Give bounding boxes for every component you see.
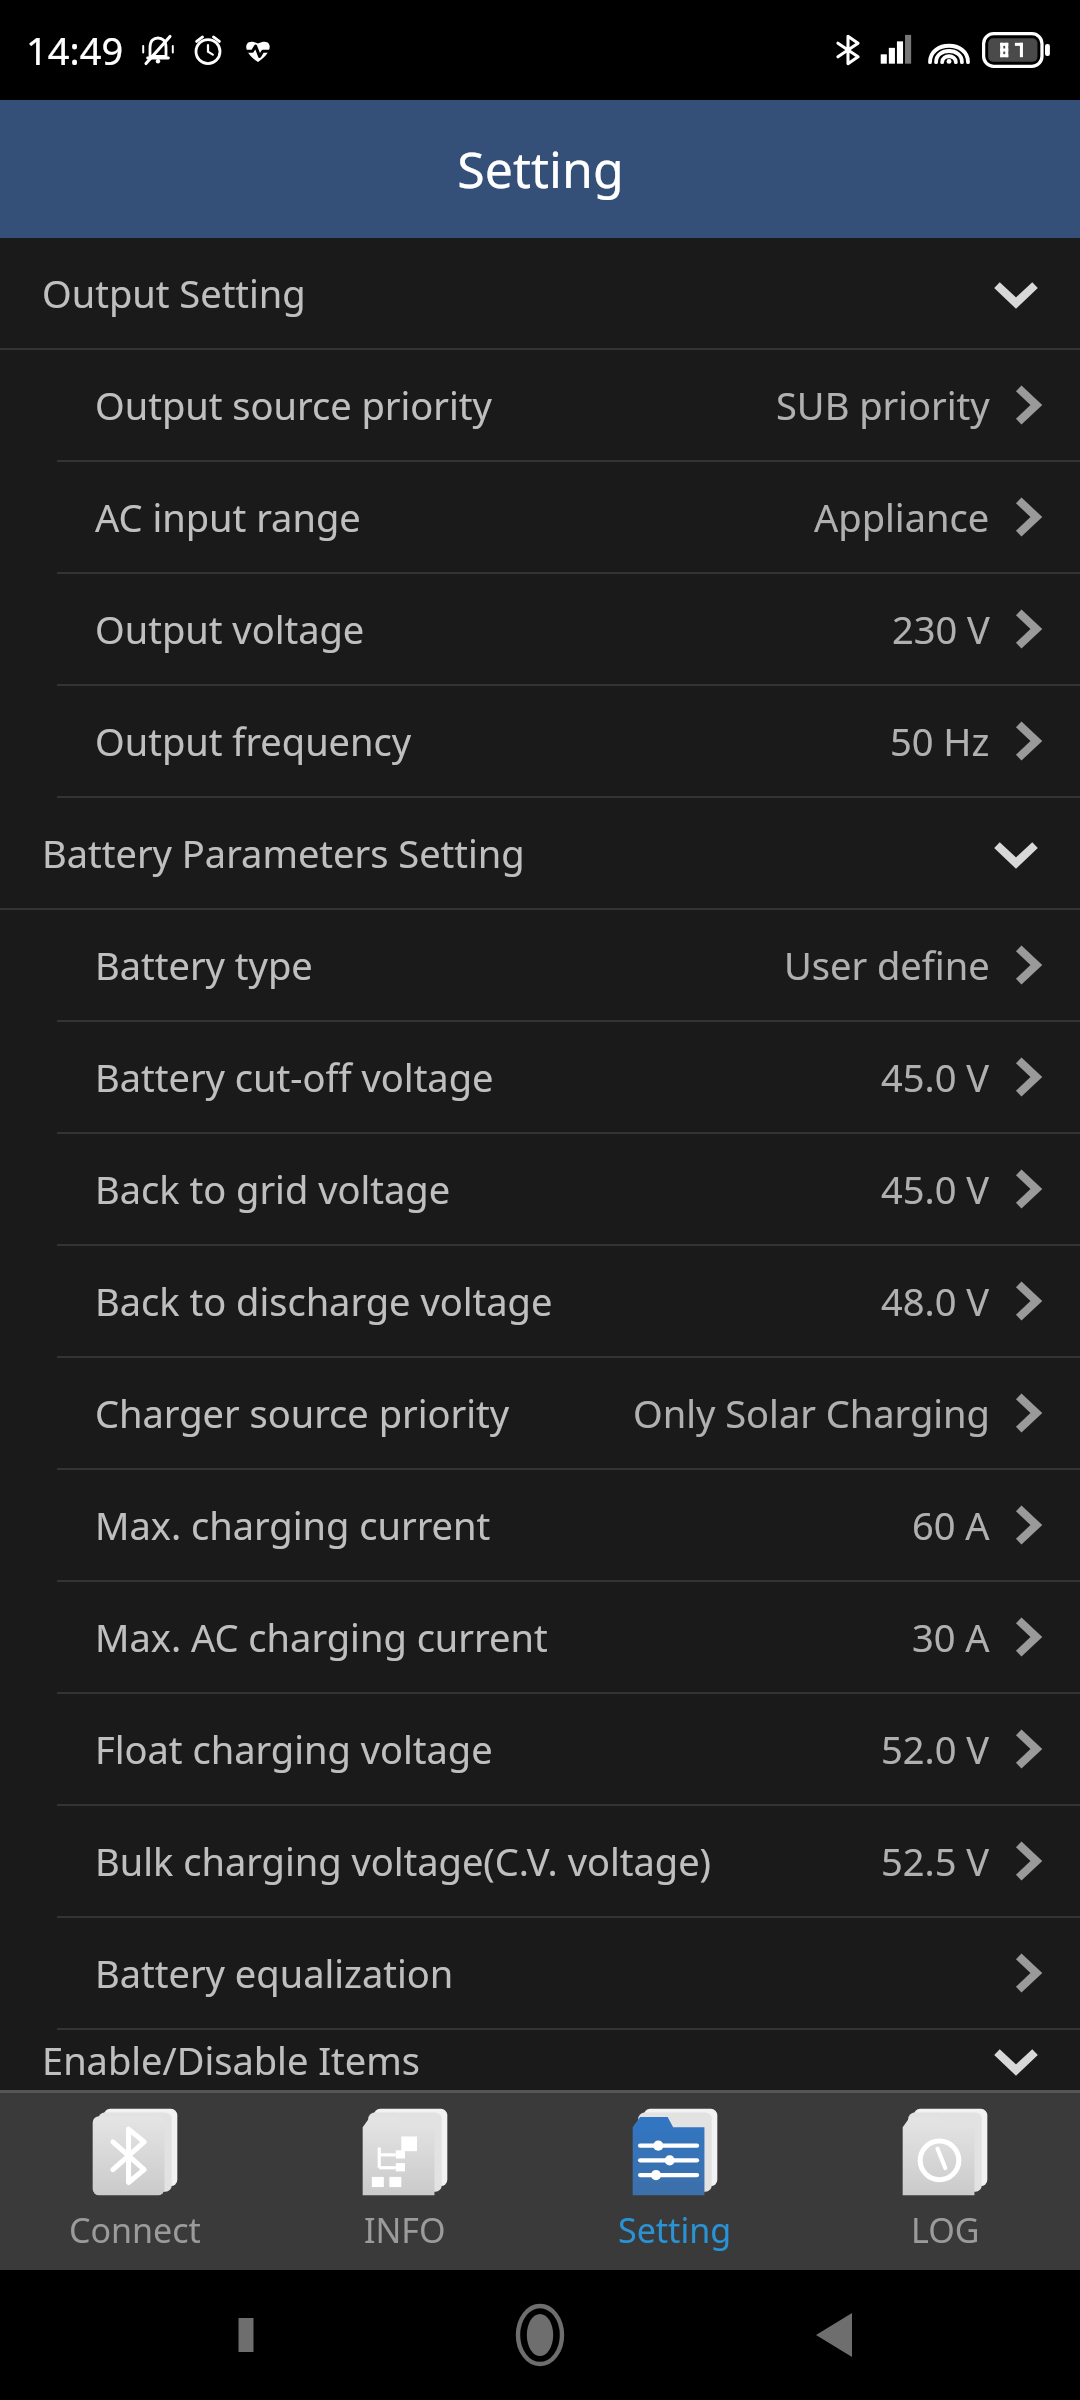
button[interactable]: Battery equalization xyxy=(0,1918,1080,2028)
button[interactable]: Recent apps xyxy=(198,2287,294,2383)
staticText: 50 Hz xyxy=(890,715,990,767)
staticText: 45.0 V xyxy=(881,1051,990,1103)
button[interactable]: Max. AC charging current xyxy=(0,1582,1080,1692)
staticText: Max. AC charging current xyxy=(95,1611,548,1663)
button[interactable]: Back to discharge voltage xyxy=(0,1246,1080,1356)
button[interactable]: Back to grid voltage xyxy=(0,1134,1080,1244)
button[interactable]: Bulk charging voltage(C.V. voltage) xyxy=(0,1806,1080,1916)
button[interactable]: Output source priority xyxy=(0,350,1080,460)
staticText: Back to discharge voltage xyxy=(95,1275,553,1327)
staticText: Only Solar Charging xyxy=(633,1387,990,1439)
button[interactable]: Home xyxy=(492,2287,588,2383)
staticText: Bulk charging voltage(C.V. voltage) xyxy=(95,1835,711,1887)
button[interactable]: Back xyxy=(786,2287,882,2383)
staticText: Max. charging current xyxy=(95,1499,491,1551)
button[interactable]: AC input range xyxy=(0,462,1080,572)
button[interactable]: Connect xyxy=(0,2093,270,2270)
button[interactable]: Setting xyxy=(540,2093,810,2270)
staticText: Back to grid voltage xyxy=(95,1163,451,1215)
button[interactable]: INFO xyxy=(270,2093,540,2270)
button[interactable]: Output frequency xyxy=(0,686,1080,796)
button[interactable]: Battery Parameters Setting xyxy=(0,798,1080,908)
staticText: Charger source priority xyxy=(95,1387,510,1439)
staticText: SUB priority xyxy=(776,379,990,431)
button[interactable]: Output Setting xyxy=(0,238,1080,348)
staticText: Setting xyxy=(457,135,624,203)
staticText: 48.0 V xyxy=(881,1275,990,1327)
staticText: Float charging voltage xyxy=(95,1723,493,1775)
button[interactable]: Battery cut-off voltage xyxy=(0,1022,1080,1132)
staticText: Output frequency xyxy=(95,715,412,767)
button[interactable]: Enable/Disable Items xyxy=(0,2030,1080,2090)
staticText: Output source priority xyxy=(95,379,492,431)
button[interactable]: Charger source priority xyxy=(0,1358,1080,1468)
staticText: 52.0 V xyxy=(881,1723,990,1775)
staticText: Setting xyxy=(618,2207,732,2253)
staticText: LOG xyxy=(911,2207,980,2253)
staticText: INFO xyxy=(364,2207,446,2253)
staticText: User define xyxy=(784,939,990,991)
staticText: AC input range xyxy=(95,491,361,543)
staticText: Battery type xyxy=(95,939,313,991)
staticText: 14:49 xyxy=(26,24,124,76)
staticText: 45.0 V xyxy=(881,1163,990,1215)
staticText: Connect xyxy=(69,2207,201,2253)
staticText: Battery Parameters Setting xyxy=(42,827,525,879)
staticText: 230 V xyxy=(892,603,990,655)
staticText: 30 A xyxy=(912,1611,990,1663)
staticText: Battery cut-off voltage xyxy=(95,1051,494,1103)
staticText: Enable/Disable Items xyxy=(42,2034,420,2086)
button[interactable]: Float charging voltage xyxy=(0,1694,1080,1804)
staticText: Battery equalization xyxy=(95,1947,454,1999)
staticText: 60 A xyxy=(912,1499,990,1551)
button[interactable]: Max. charging current xyxy=(0,1470,1080,1580)
button[interactable]: LOG xyxy=(810,2093,1080,2270)
staticText: 52.5 V xyxy=(881,1835,990,1887)
button[interactable]: Output voltage xyxy=(0,574,1080,684)
staticText: Appliance xyxy=(814,491,990,543)
staticText: Output voltage xyxy=(95,603,365,655)
staticText: Output Setting xyxy=(42,267,306,319)
button[interactable]: Battery type xyxy=(0,910,1080,1020)
